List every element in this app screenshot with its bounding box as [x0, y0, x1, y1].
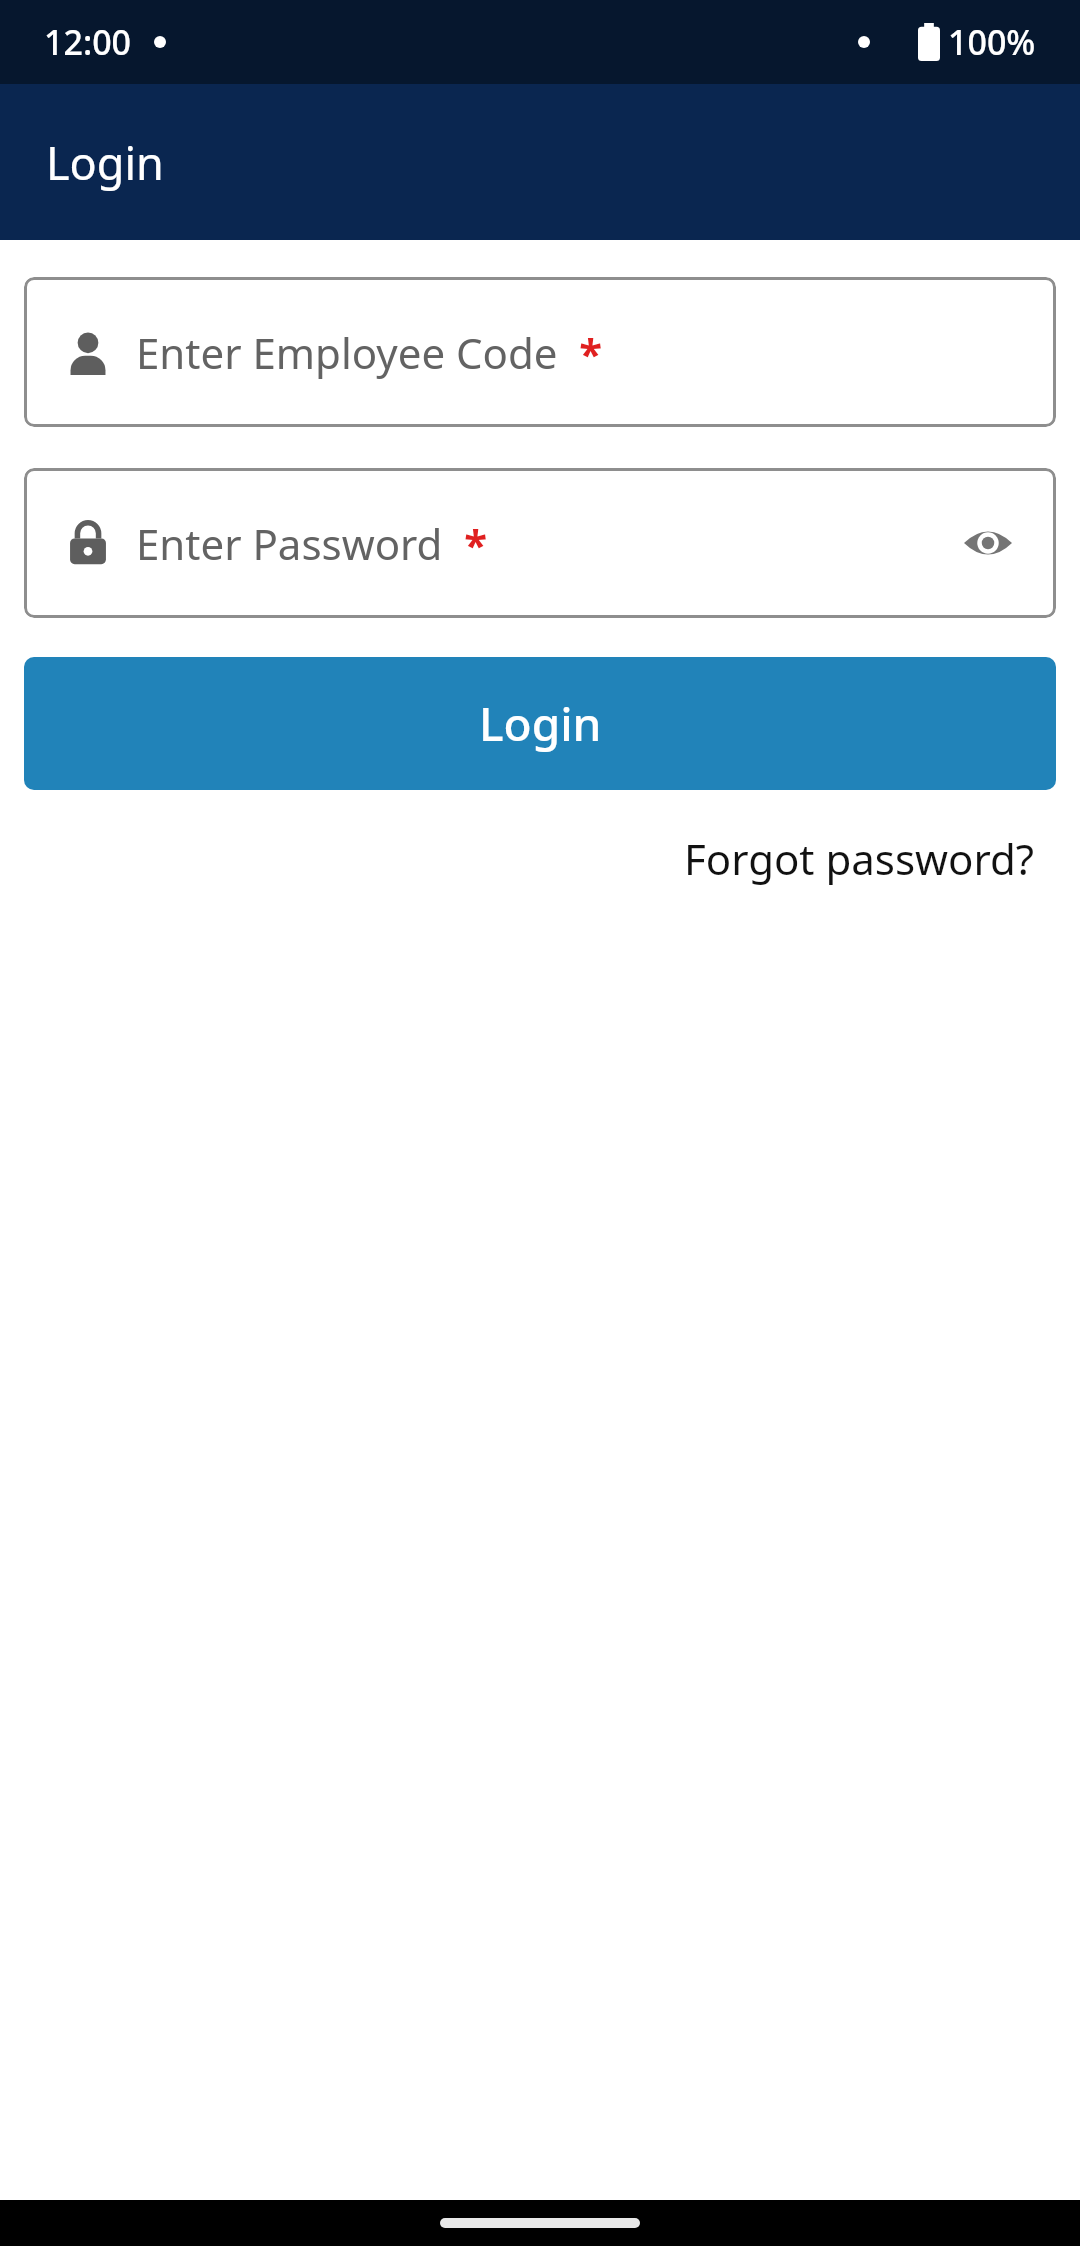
staticText: Enter Password *: [136, 515, 960, 572]
staticText: 12:00: [44, 19, 132, 65]
staticText: Forgot password?: [684, 830, 1035, 887]
staticText: Login: [46, 132, 164, 193]
button[interactable]: Login: [24, 657, 1056, 790]
button[interactable]: Employee code: [24, 277, 1056, 427]
other: Password: [65, 520, 111, 566]
button[interactable]: Forgot password?: [684, 826, 1080, 891]
button[interactable]: Show password: [960, 515, 1016, 571]
staticText: Login: [479, 692, 602, 755]
other: Employee code: [65, 329, 111, 375]
staticText: Enter Employee Code *: [136, 324, 1016, 381]
button[interactable]: Password: [24, 468, 1056, 618]
staticText: 100%: [948, 19, 1036, 65]
